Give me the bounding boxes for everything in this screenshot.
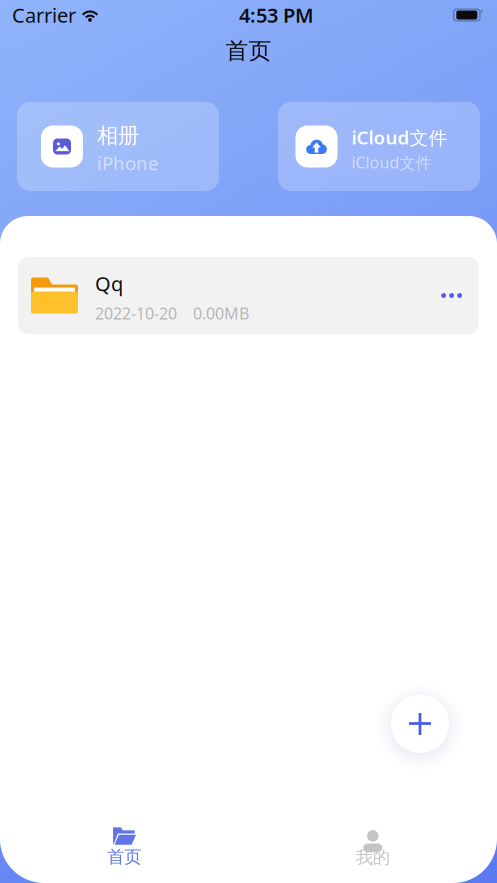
staticText: iPhone	[97, 151, 159, 175]
button[interactable]: Qq	[18, 257, 479, 334]
button[interactable]: iCloud文件	[278, 102, 480, 191]
staticText: iCloud文件	[351, 152, 431, 173]
staticText: iCloud文件	[351, 125, 447, 150]
staticText: Carrier	[12, 2, 76, 28]
staticText: 2022-10-20	[95, 303, 177, 324]
button[interactable]: 首页	[0, 811, 248, 873]
staticText: 首页	[225, 37, 271, 65]
button[interactable]: 相册	[17, 102, 219, 191]
staticText: 相册	[97, 122, 139, 149]
staticText: 0.00MB	[193, 303, 249, 324]
staticText: 4:53 PM	[239, 2, 314, 28]
staticText: 首页	[107, 846, 141, 868]
staticText: Qq	[95, 270, 123, 297]
staticText: 我的	[356, 847, 390, 868]
button[interactable]: 我的	[248, 811, 497, 873]
button[interactable]: Add	[391, 695, 449, 753]
